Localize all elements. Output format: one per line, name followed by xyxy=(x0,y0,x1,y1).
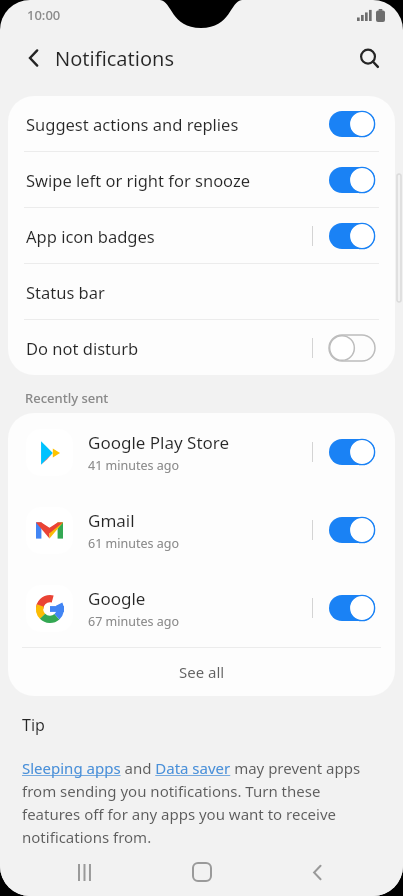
staticText: App icon badges xyxy=(26,225,312,247)
staticText: 41 minutes ago xyxy=(88,457,179,474)
button[interactable]: Google xyxy=(8,569,395,647)
staticText: Sleeping apps and Data saver may prevent… xyxy=(22,758,381,847)
button[interactable]: Home xyxy=(172,848,232,896)
button[interactable]: Recent apps xyxy=(56,848,116,896)
staticText: Google xyxy=(88,587,146,610)
staticText: Status bar xyxy=(26,281,375,303)
staticText: See all xyxy=(179,662,225,682)
staticText: Google Play Store xyxy=(88,431,230,454)
staticText: Tip xyxy=(22,714,45,736)
staticText: 10:00 xyxy=(27,6,61,24)
button[interactable]: See all xyxy=(8,648,395,696)
button[interactable]: Do not disturb xyxy=(8,320,395,375)
staticText: Notifications xyxy=(55,45,174,72)
staticText: 67 minutes ago xyxy=(88,613,179,630)
staticText: Swipe left or right for snooze xyxy=(26,169,329,191)
button[interactable]: Gmail xyxy=(8,491,395,569)
button[interactable]: Status bar xyxy=(8,264,395,319)
button[interactable]: App icon badges xyxy=(8,208,395,263)
staticText: Recently sent xyxy=(25,389,109,407)
button[interactable]: Back xyxy=(10,34,58,82)
staticText: Gmail xyxy=(88,509,135,532)
button[interactable]: Google Play Store xyxy=(8,413,395,491)
button[interactable]: Suggest actions and replies xyxy=(8,96,395,151)
staticText: 61 minutes ago xyxy=(88,535,179,552)
staticText: Suggest actions and replies xyxy=(26,113,329,135)
button[interactable]: Back xyxy=(287,848,347,896)
button[interactable]: Swipe left or right for snooze xyxy=(8,152,395,207)
button[interactable]: Search xyxy=(345,34,393,82)
staticText: Do not disturb xyxy=(26,337,312,359)
